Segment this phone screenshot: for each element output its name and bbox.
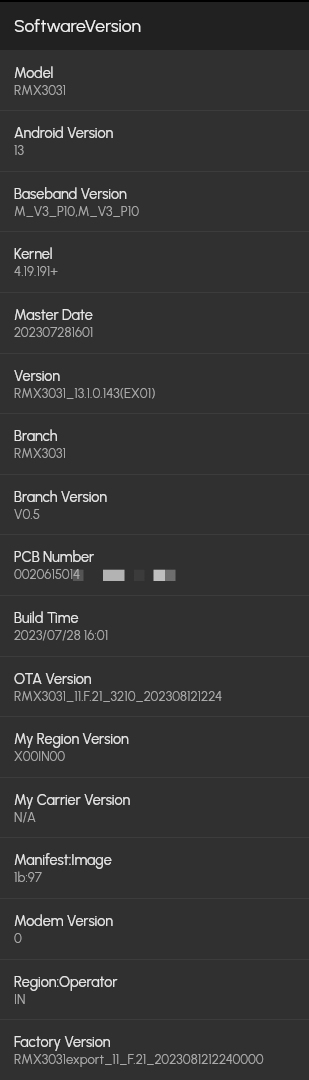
staticText: RMX3031: [14, 445, 67, 461]
staticText: 202307281601: [14, 324, 94, 340]
staticText: Branch: [14, 427, 58, 444]
button[interactable]: Modem Version: [0, 898, 309, 959]
staticText: Model: [14, 64, 54, 81]
staticText: M_V3_P10,M_V3_P10: [14, 203, 140, 219]
staticText: IN: [14, 991, 26, 1007]
staticText: V0.5: [14, 506, 40, 522]
button[interactable]: Factory Version: [0, 1019, 309, 1080]
staticText: My Region Version: [14, 730, 129, 747]
staticText: Factory Version: [14, 1033, 111, 1050]
button[interactable]: OTA Version: [0, 656, 309, 717]
button[interactable]: Region:Operator: [0, 959, 309, 1020]
staticText: N/A: [14, 809, 36, 825]
staticText: OTA Version: [14, 670, 92, 687]
staticText: Modem Version: [14, 912, 113, 929]
button[interactable]: Master Date: [0, 292, 309, 353]
button[interactable]: Build Time: [0, 595, 309, 656]
staticText: 0020615014: [14, 566, 81, 582]
staticText: Region:Operator: [14, 973, 118, 990]
staticText: Kernel: [14, 245, 53, 262]
staticText: SoftwareVersion: [14, 15, 141, 36]
staticText: RMX3031_13.1.0.143(EX01): [14, 385, 156, 401]
button[interactable]: My Region Version: [0, 716, 309, 777]
button[interactable]: Branch: [0, 413, 309, 474]
button[interactable]: PCB Number: [0, 534, 309, 595]
button[interactable]: Model: [0, 50, 309, 111]
staticText: X00IN00: [14, 748, 66, 764]
staticText: Build Time: [14, 609, 79, 626]
staticText: RMX3031export_11_F.21_2023081212240000: [14, 1051, 264, 1067]
button[interactable]: Version: [0, 353, 309, 414]
staticText: 4.19.191+: [14, 263, 58, 279]
staticText: 1b:97: [14, 869, 42, 885]
button[interactable]: Android Version: [0, 110, 309, 171]
staticText: Baseband Version: [14, 185, 127, 202]
staticText: PCB Number: [14, 548, 95, 565]
staticText: Branch Version: [14, 488, 108, 505]
staticText: RMX3031_11.F.21_3210_202308121224: [14, 688, 223, 704]
button[interactable]: Manifest:Image: [0, 837, 309, 898]
staticText: My Carrier Version: [14, 791, 131, 808]
staticText: Manifest:Image: [14, 851, 112, 868]
staticText: 0: [14, 930, 22, 946]
staticText: RMX3031: [14, 82, 67, 98]
staticText: Master Date: [14, 306, 93, 323]
button[interactable]: Branch Version: [0, 474, 309, 535]
button[interactable]: Kernel: [0, 231, 309, 292]
staticText: 2023/07/28 16:01: [14, 627, 109, 643]
button[interactable]: My Carrier Version: [0, 777, 309, 838]
staticText: Version: [14, 367, 60, 384]
staticText: Android Version: [14, 124, 114, 141]
staticText: 13: [14, 142, 24, 158]
button[interactable]: Baseband Version: [0, 171, 309, 232]
